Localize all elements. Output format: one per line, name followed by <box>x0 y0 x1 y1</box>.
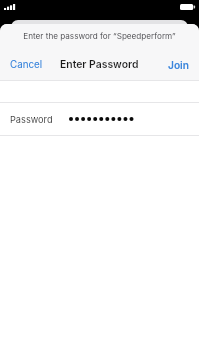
button[interactable]: Cancel <box>0 54 53 76</box>
button[interactable]: Join <box>159 54 199 76</box>
other: Battery <box>180 4 195 10</box>
staticText: Enter the password for “Speedperform” <box>23 31 176 41</box>
button[interactable]: Password <box>0 103 199 135</box>
staticText: Join <box>168 59 190 71</box>
staticText: Enter Password <box>60 58 139 71</box>
other: Cellular signal <box>4 4 16 10</box>
staticText: Password <box>10 114 53 125</box>
staticText: Cancel <box>10 59 43 71</box>
